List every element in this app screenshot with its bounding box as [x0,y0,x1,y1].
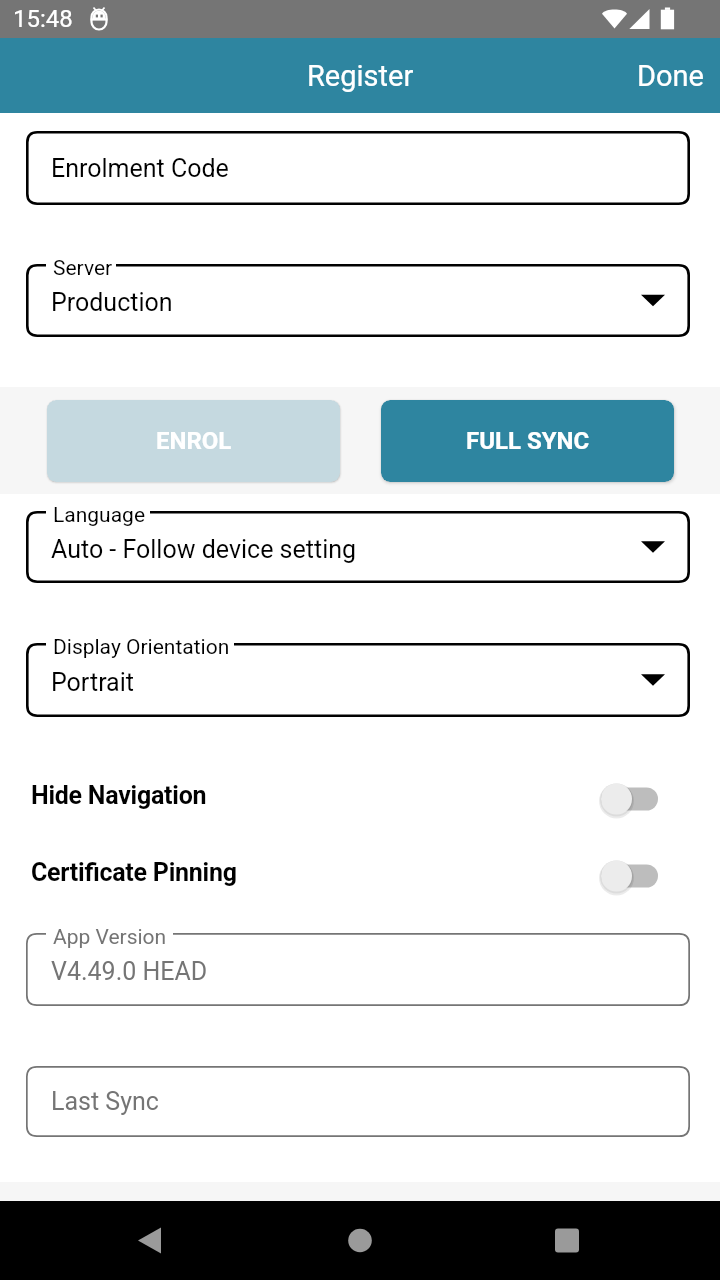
button[interactable]: Certificate Pinning [0,841,720,911]
button[interactable]: Home [320,1201,400,1280]
button[interactable]: Server [26,264,690,337]
button[interactable]: Display Orientation [26,643,690,717]
button[interactable]: Hide Navigation toggle [596,769,668,829]
staticText: Language [53,503,146,528]
button[interactable]: Language [26,511,690,583]
button[interactable]: Last Sync [26,1066,690,1137]
staticText: Auto - Follow device setting [51,535,357,564]
staticText: ENROL [156,427,232,455]
button[interactable]: FULL SYNC [381,400,674,482]
staticText: Certificate Pinning [31,858,237,887]
staticText: Done [637,59,704,93]
button[interactable]: Certificate Pinning toggle [596,846,668,906]
staticText: Server [53,256,113,281]
staticText: V4.49.0 HEAD [51,957,208,986]
button[interactable]: Recent apps [527,1201,607,1280]
staticText: Hide Navigation [31,781,207,810]
button[interactable]: Done [621,38,720,113]
staticText: Last Sync [51,1087,159,1116]
staticText: Display Orientation [53,635,230,660]
staticText: App Version [53,925,167,950]
staticText: 15:48 [13,5,73,33]
button[interactable]: Hide Navigation [0,764,720,834]
button[interactable]: App Version [26,933,690,1006]
staticText: Register [307,59,414,93]
button[interactable]: Enrolment Code [26,131,690,205]
staticText: Production [51,288,173,317]
button[interactable]: ENROL [47,400,340,482]
staticText: Portrait [51,668,134,697]
staticText: FULL SYNC [466,427,590,455]
staticText: Enrolment Code [51,154,229,183]
button[interactable]: Back [110,1201,190,1280]
